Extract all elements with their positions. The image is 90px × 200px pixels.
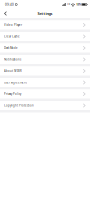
button[interactable]: About SVIBR: [0, 66, 90, 75]
button[interactable]: Privacy Policy: [0, 89, 90, 98]
button[interactable]: Video Player: [0, 20, 90, 29]
button[interactable]: Back: [4, 11, 7, 16]
button[interactable]: Clear Cache: [0, 32, 90, 41]
button[interactable]: Dark Mode: [0, 43, 90, 52]
button[interactable]: Copyright Protection: [0, 101, 90, 110]
button[interactable]: User Agreement: [0, 78, 90, 87]
staticText: Copyright Protection: [4, 104, 34, 107]
staticText: 09:40: [5, 2, 14, 7]
staticText: Clear Cache: [4, 35, 20, 38]
staticText: Video Player: [4, 23, 22, 27]
button[interactable]: Notifications: [0, 55, 90, 64]
staticText: Privacy Policy: [4, 92, 21, 96]
staticText: 100%: [76, 3, 81, 6]
staticText: Settings: [37, 11, 52, 16]
staticText: User Agreement: [4, 81, 27, 84]
staticText: Notifications: [4, 58, 21, 61]
staticText: Dark Mode: [4, 46, 18, 50]
staticText: About SVIBR: [4, 69, 22, 73]
staticText: LTE: [67, 3, 70, 6]
